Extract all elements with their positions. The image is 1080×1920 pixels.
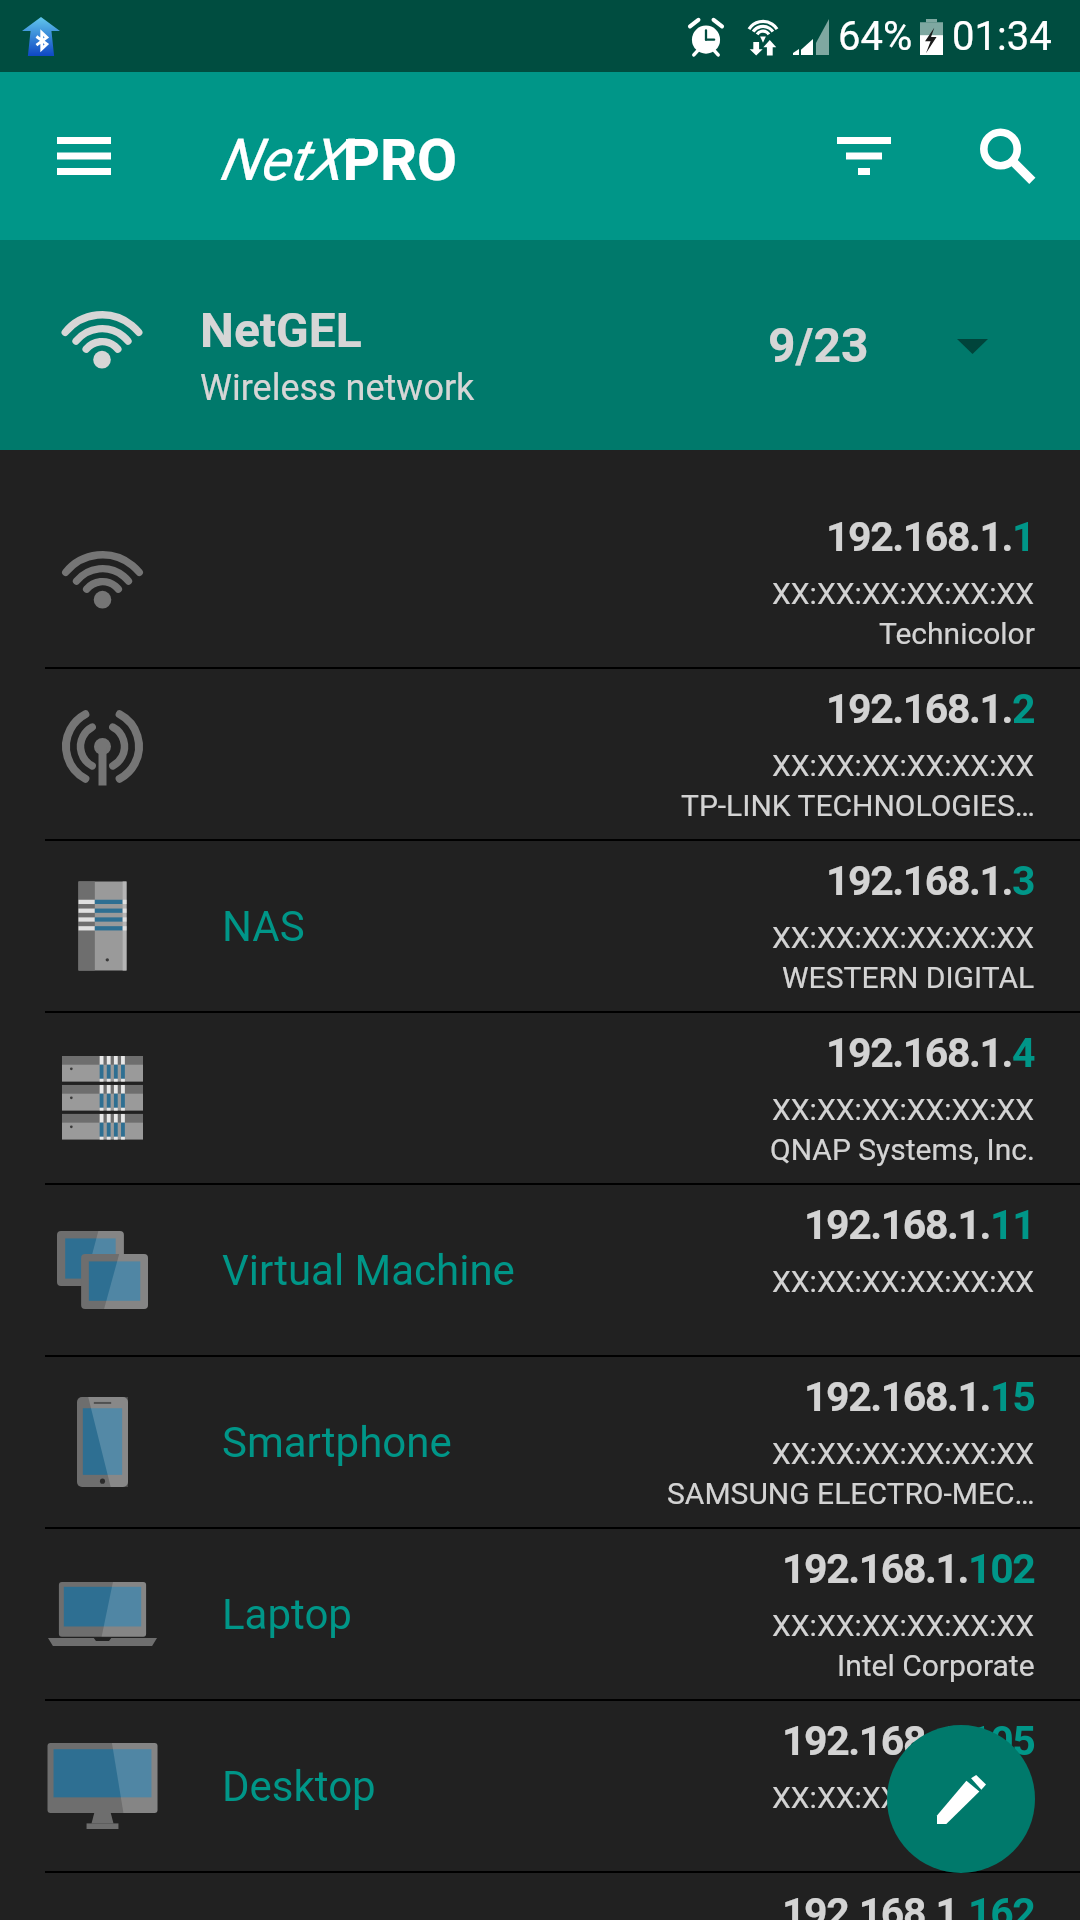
button[interactable]: 192.168.1.1 xyxy=(0,497,1080,667)
staticText: 192.168.1.102 xyxy=(782,1545,1035,1593)
button[interactable]: 192.168.1.162 xyxy=(0,1873,1080,1920)
staticText: Intel Corporate xyxy=(837,1648,1035,1683)
staticText: QNAP Systems, Inc. xyxy=(770,1132,1035,1167)
staticText: 01:34 xyxy=(952,13,1052,60)
button[interactable]: Search xyxy=(952,101,1062,211)
staticText: NetGEL xyxy=(200,302,362,358)
button[interactable]: Desktop xyxy=(0,1701,1080,1871)
staticText: 192.168.1.1 xyxy=(826,513,1035,561)
staticText: XX:XX:XX:XX:XX:XX xyxy=(772,1608,1035,1643)
staticText: XX:XX:XX:XX:XX:XX xyxy=(772,920,1035,955)
button[interactable]: 192.168.1.4 xyxy=(0,1013,1080,1183)
staticText: 192.168.1.4 xyxy=(826,1029,1035,1077)
staticText: 64% xyxy=(838,13,913,60)
staticText: XX:XX:XX:XX:XX:XX xyxy=(772,1780,1035,1815)
staticText: NetXPRO xyxy=(219,126,458,194)
button[interactable]: Open navigation menu xyxy=(29,101,139,211)
button[interactable]: Smartphone xyxy=(0,1357,1080,1527)
staticText: 192.168.1.15 xyxy=(804,1373,1035,1421)
staticText: 192.168.1.162 xyxy=(782,1889,1035,1920)
staticText: 9/23 xyxy=(768,317,869,373)
staticText: XX:XX:XX:XX:XX:XX xyxy=(772,1264,1035,1299)
staticText: XX:XX:XX:XX:XX:XX xyxy=(772,748,1035,783)
button[interactable]: NAS xyxy=(0,841,1080,1011)
staticText: Technicolor xyxy=(879,616,1035,651)
button[interactable]: 192.168.1.2 xyxy=(0,669,1080,839)
staticText: Virtual Machine xyxy=(222,1246,515,1295)
staticText: 192.168.1.105 xyxy=(782,1717,1035,1765)
button[interactable]: Virtual Machine xyxy=(0,1185,1080,1355)
staticText: Wireless network xyxy=(200,367,475,409)
staticText: NAS xyxy=(222,902,305,951)
staticText: SAMSUNG ELECTRO-MEC… xyxy=(667,1476,1035,1511)
staticText: XX:XX:XX:XX:XX:XX xyxy=(772,1436,1035,1471)
staticText: TP-LINK TECHNOLOGIES… xyxy=(681,788,1035,823)
staticText: WESTERN DIGITAL xyxy=(782,960,1035,995)
button[interactable]: Edit xyxy=(887,1725,1035,1873)
staticText: 192.168.1.2 xyxy=(826,685,1035,733)
button[interactable]: Laptop xyxy=(0,1529,1080,1699)
staticText: Desktop xyxy=(222,1762,376,1811)
staticText: Smartphone xyxy=(222,1418,452,1467)
staticText: Laptop xyxy=(222,1590,352,1639)
staticText: 192.168.1.11 xyxy=(804,1201,1035,1249)
button[interactable]: NetGEL xyxy=(0,240,1080,450)
staticText: XX:XX:XX:XX:XX:XX xyxy=(772,576,1035,611)
staticText: 192.168.1.3 xyxy=(826,857,1035,905)
button[interactable]: Filter xyxy=(809,101,919,211)
staticText: XX:XX:XX:XX:XX:XX xyxy=(772,1092,1035,1127)
